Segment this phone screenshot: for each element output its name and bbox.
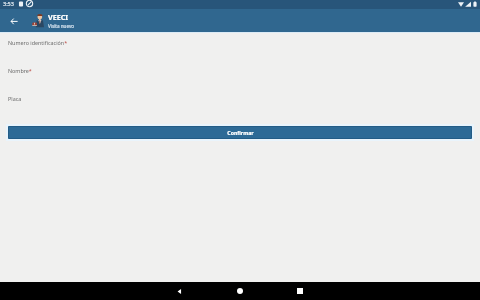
staticText: Visita nuevo	[48, 23, 75, 29]
button[interactable]: Back	[0, 9, 24, 32]
button[interactable]: Numero identificación*	[0, 34, 480, 62]
button[interactable]: Confirmar	[8, 126, 472, 139]
button[interactable]: Recent apps	[285, 282, 315, 300]
staticText: VEECI	[48, 12, 69, 22]
staticText: Numero identificación*	[8, 39, 68, 46]
staticText: Confirmar	[227, 129, 254, 136]
button[interactable]: Nombre*	[0, 62, 480, 90]
button[interactable]: Home	[225, 282, 255, 300]
staticText: Placa	[8, 95, 22, 102]
button[interactable]: Back	[164, 282, 194, 300]
staticText: 3:53	[3, 0, 14, 7]
staticText: Nombre*	[8, 67, 32, 74]
button[interactable]: Placa	[0, 90, 480, 118]
